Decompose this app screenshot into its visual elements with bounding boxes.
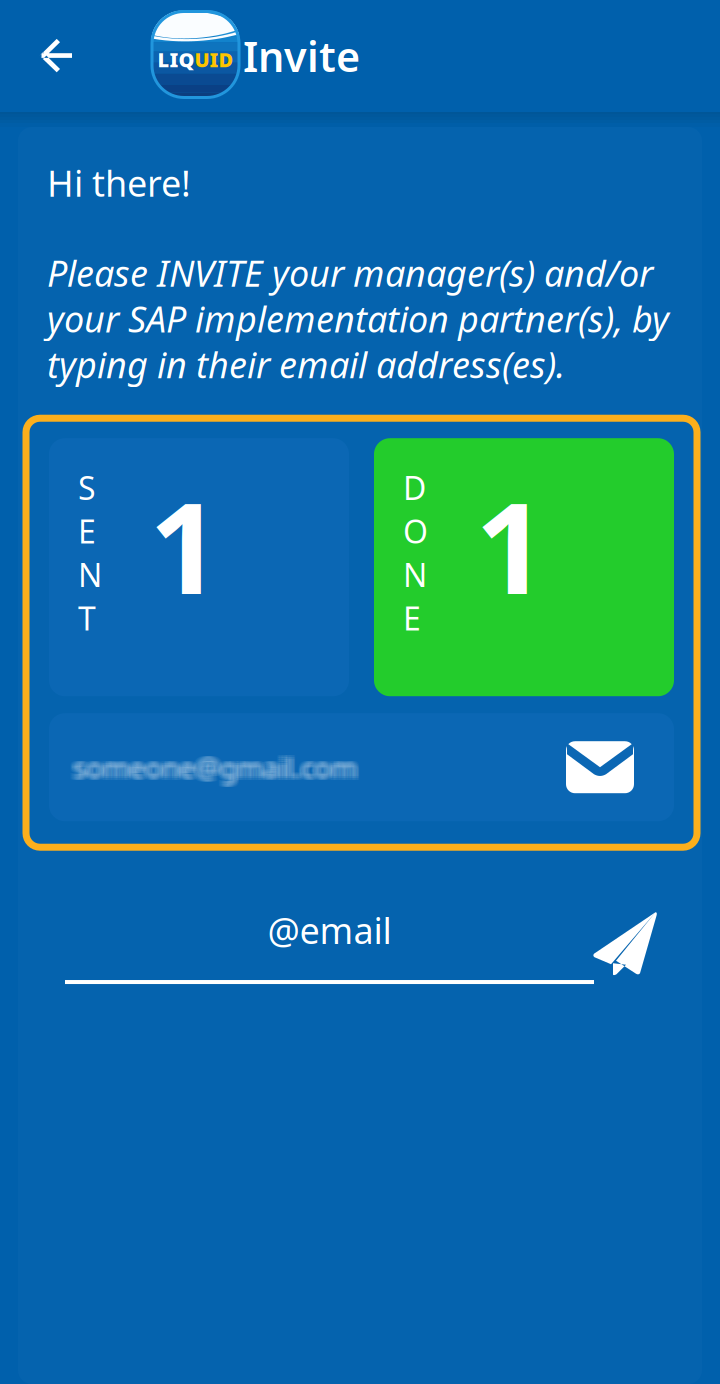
staticText: someone@gmail.com bbox=[70, 749, 354, 786]
staticText: N bbox=[78, 553, 102, 596]
staticText: 1 bbox=[475, 462, 547, 629]
staticText: your SAP implementation partner(s), by bbox=[47, 295, 669, 342]
staticText: someone@gmail.com bbox=[77, 749, 361, 786]
staticText: someone@gmail.com bbox=[72, 749, 356, 786]
staticText: someone@gmail.com bbox=[77, 747, 361, 784]
staticText: someone@gmail.com bbox=[72, 747, 356, 784]
staticText: Please INVITE your manager(s) and/or bbox=[47, 249, 653, 297]
staticText: D bbox=[403, 466, 426, 509]
staticText: someone@gmail.com bbox=[73, 749, 357, 786]
staticText: O bbox=[403, 510, 428, 552]
staticText: someone@gmail.com bbox=[74, 749, 358, 786]
staticText: Hi there! bbox=[47, 159, 191, 207]
button[interactable]: Send invite bbox=[594, 906, 657, 976]
staticText: someone@gmail.com bbox=[75, 751, 359, 788]
staticText: someone@gmail.com bbox=[72, 751, 356, 788]
staticText: someone@gmail.com bbox=[74, 747, 358, 784]
staticText: E bbox=[403, 597, 421, 639]
staticText: Invite bbox=[243, 29, 360, 83]
staticText: LIQ bbox=[157, 46, 194, 73]
staticText: N bbox=[403, 553, 427, 596]
staticText: someone@gmail.com bbox=[69, 751, 353, 788]
staticText: someone@gmail.com bbox=[73, 747, 357, 784]
staticText: T bbox=[78, 597, 96, 639]
staticText: someone@gmail.com bbox=[69, 747, 353, 784]
staticText: someone@gmail.com bbox=[70, 751, 354, 788]
button[interactable]: Back bbox=[20, 20, 92, 92]
staticText: typing in their email address(es). bbox=[47, 340, 565, 388]
staticText: 1 bbox=[149, 462, 221, 629]
staticText: someone@gmail.com bbox=[70, 747, 354, 784]
staticText: someone@gmail.com bbox=[75, 749, 359, 786]
staticText: UID bbox=[194, 46, 233, 73]
staticText: someone@gmail.com bbox=[74, 751, 358, 788]
staticText: E bbox=[78, 510, 96, 552]
staticText: someone@gmail.com bbox=[75, 747, 359, 784]
staticText: S bbox=[78, 466, 96, 509]
staticText: someone@gmail.com bbox=[77, 751, 361, 788]
staticText: @email bbox=[267, 906, 391, 954]
staticText: someone@gmail.com bbox=[69, 749, 353, 786]
staticText: someone@gmail.com bbox=[73, 751, 357, 788]
